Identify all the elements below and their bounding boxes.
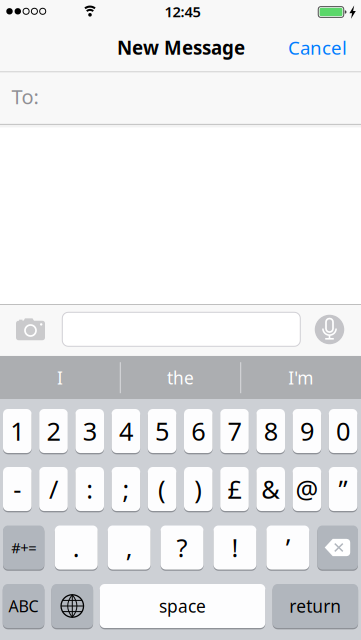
button[interactable]: ) — [184, 467, 213, 511]
staticText: Cancel — [288, 35, 347, 60]
button[interactable]: . — [55, 525, 98, 569]
staticText: & — [261, 472, 280, 506]
staticText: I — [57, 366, 63, 389]
button[interactable]: : — [75, 467, 104, 511]
staticText: 1 — [10, 414, 24, 448]
button[interactable]: / — [39, 467, 68, 511]
staticText: £ — [227, 472, 241, 506]
staticText: , — [126, 531, 133, 564]
staticText: ( — [158, 472, 166, 506]
staticText: 8 — [264, 414, 278, 448]
staticText: - — [13, 472, 21, 506]
button[interactable]: 6 — [184, 409, 213, 453]
button[interactable]: 7 — [220, 409, 249, 453]
staticText: 2 — [46, 414, 60, 448]
staticText: / — [49, 472, 58, 506]
button[interactable]: ABC — [3, 584, 44, 628]
button[interactable]: 9 — [293, 409, 321, 453]
staticText: ’ — [286, 531, 290, 564]
staticText: ” — [339, 472, 348, 506]
staticText: 6 — [191, 414, 205, 448]
button[interactable]: ; — [112, 467, 140, 511]
button[interactable]: 8 — [256, 409, 285, 453]
staticText: ; — [122, 472, 129, 506]
button[interactable]: the — [121, 356, 240, 399]
staticText: #+= — [11, 538, 36, 557]
staticText: ABC — [9, 595, 39, 617]
button[interactable]: space — [100, 584, 265, 628]
button[interactable]: Cancel — [288, 35, 347, 60]
button[interactable]: 2 — [39, 409, 68, 453]
button[interactable]: , — [108, 525, 151, 569]
button[interactable]: 5 — [148, 409, 176, 453]
button[interactable]: @ — [293, 467, 321, 511]
button[interactable]: 0 — [329, 409, 357, 453]
button[interactable]: - — [3, 467, 32, 511]
staticText: New Message — [117, 35, 245, 60]
staticText: the — [167, 366, 194, 389]
button[interactable]: I — [0, 356, 119, 399]
button[interactable]: return — [273, 584, 358, 628]
button[interactable]: ! — [213, 525, 256, 569]
staticText: To: — [11, 83, 38, 110]
button[interactable]: Camera — [10, 314, 50, 344]
staticText: 5 — [155, 414, 169, 448]
button[interactable]: #+= — [3, 525, 44, 569]
button[interactable]: £ — [220, 467, 249, 511]
staticText: 12:45 — [164, 2, 200, 21]
button[interactable]: Dictate — [314, 314, 344, 344]
staticText: space — [159, 594, 206, 617]
button[interactable]: ” — [329, 467, 357, 511]
staticText: return — [289, 594, 341, 617]
staticText: 7 — [227, 414, 241, 448]
staticText: ! — [231, 531, 238, 564]
button[interactable]: ’ — [266, 525, 309, 569]
button[interactable]: 3 — [75, 409, 104, 453]
staticText: ? — [176, 531, 187, 564]
staticText: 0 — [336, 414, 350, 448]
button[interactable]: ? — [161, 525, 203, 569]
button[interactable]: ( — [148, 467, 176, 511]
button[interactable]: I'm — [241, 356, 360, 399]
staticText: ) — [194, 472, 202, 506]
staticText: : — [86, 472, 93, 506]
staticText: 4 — [119, 414, 133, 448]
staticText: . — [73, 531, 80, 564]
button[interactable]: & — [256, 467, 285, 511]
button[interactable]: Next keyboard — [51, 584, 93, 628]
button[interactable]: 4 — [112, 409, 140, 453]
button[interactable]: 1 — [3, 409, 32, 453]
button[interactable]: Message field — [62, 312, 300, 346]
button[interactable]: Delete — [317, 525, 358, 569]
staticText: @ — [295, 472, 318, 506]
staticText: 3 — [83, 414, 97, 448]
staticText: I'm — [288, 366, 313, 389]
staticText: 9 — [300, 414, 314, 448]
